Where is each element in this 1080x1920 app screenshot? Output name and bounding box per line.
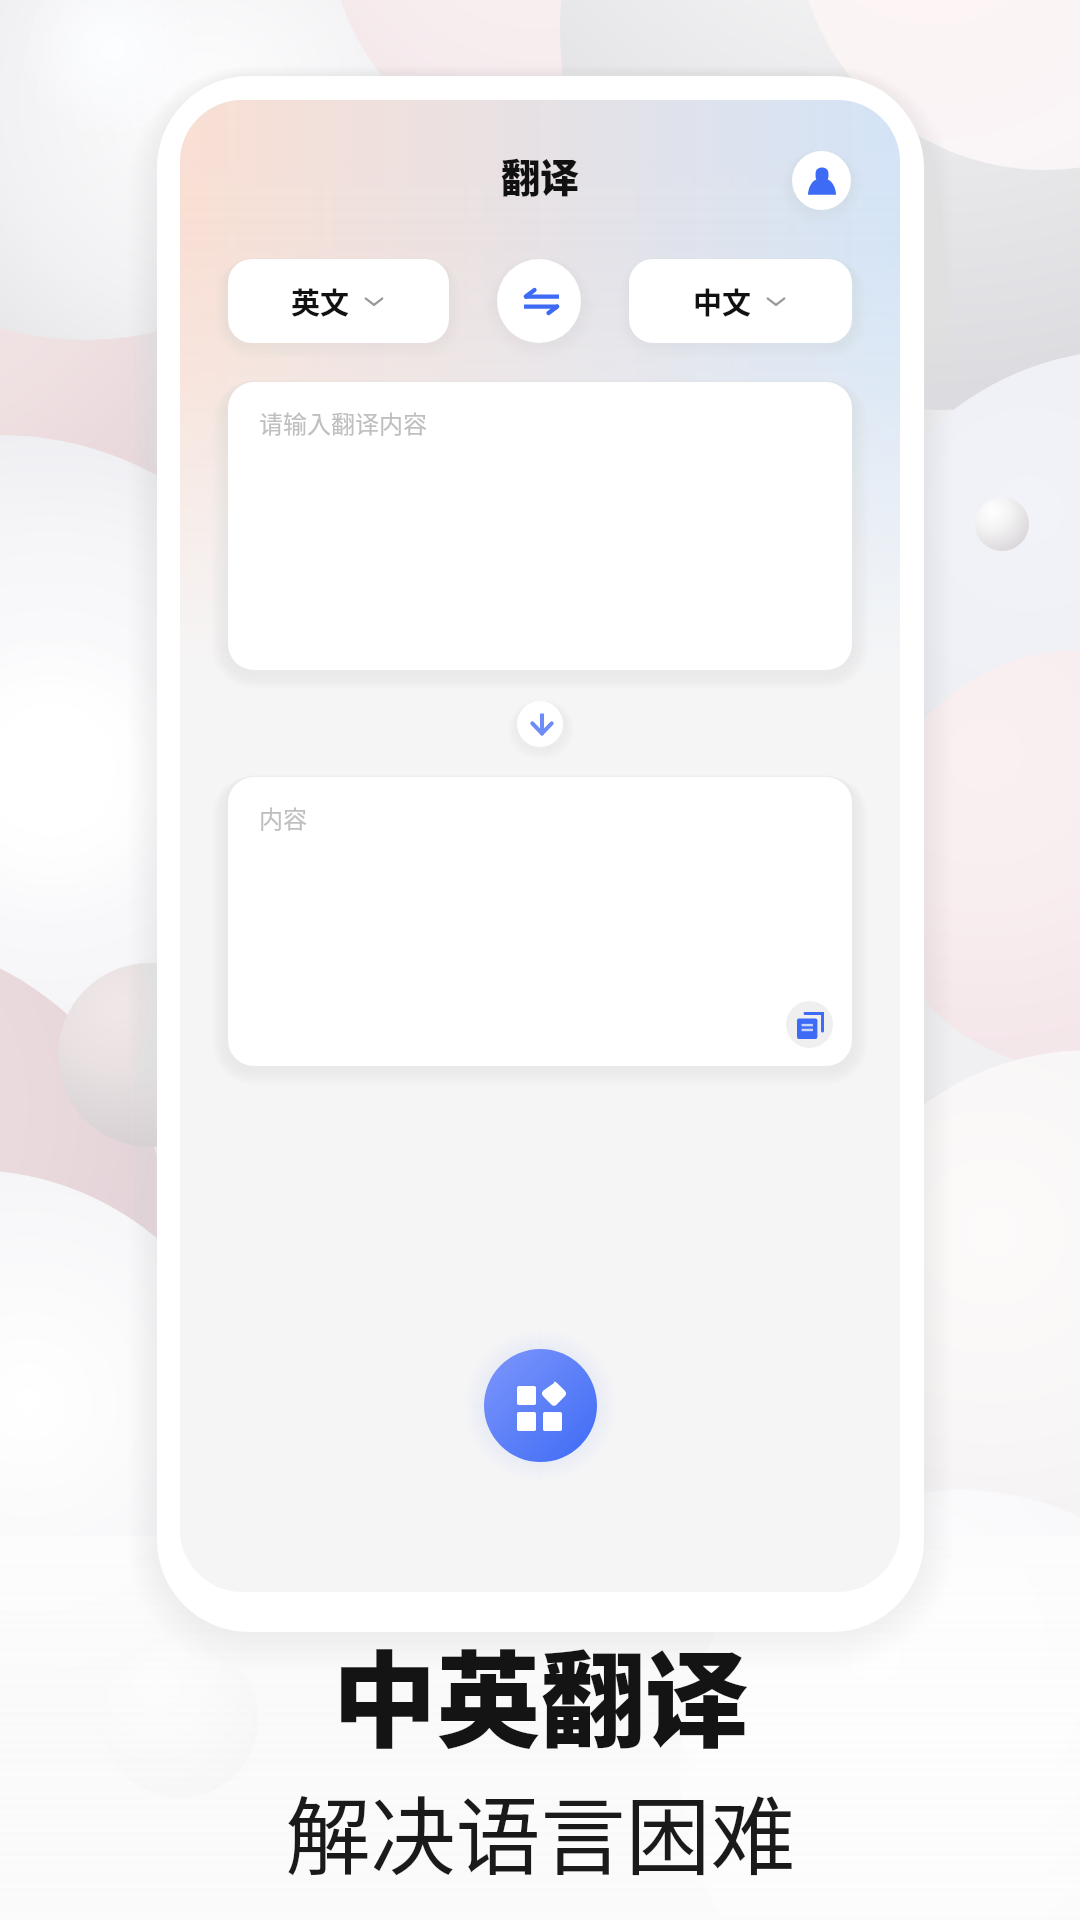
button[interactable]: 内容	[228, 777, 852, 1066]
button[interactable]: Swap languages	[497, 259, 581, 343]
button[interactable]: Translate	[517, 701, 563, 747]
staticText: 内容	[259, 800, 307, 835]
button[interactable]: Copy	[786, 1001, 833, 1048]
button[interactable]: 中文	[629, 259, 852, 343]
button[interactable]: 请输入翻译内容	[228, 382, 852, 670]
staticText: 英文	[291, 280, 350, 322]
staticText: 中文	[693, 280, 752, 322]
staticText: 解决语言困难	[285, 1769, 796, 1892]
button[interactable]: Profile	[792, 151, 851, 210]
staticText: 中英翻译	[332, 1618, 749, 1769]
staticText: 请输入翻译内容	[259, 405, 427, 440]
staticText: 翻译	[501, 147, 580, 203]
button[interactable]: More tools	[484, 1349, 597, 1462]
button[interactable]: 英文	[228, 259, 449, 343]
